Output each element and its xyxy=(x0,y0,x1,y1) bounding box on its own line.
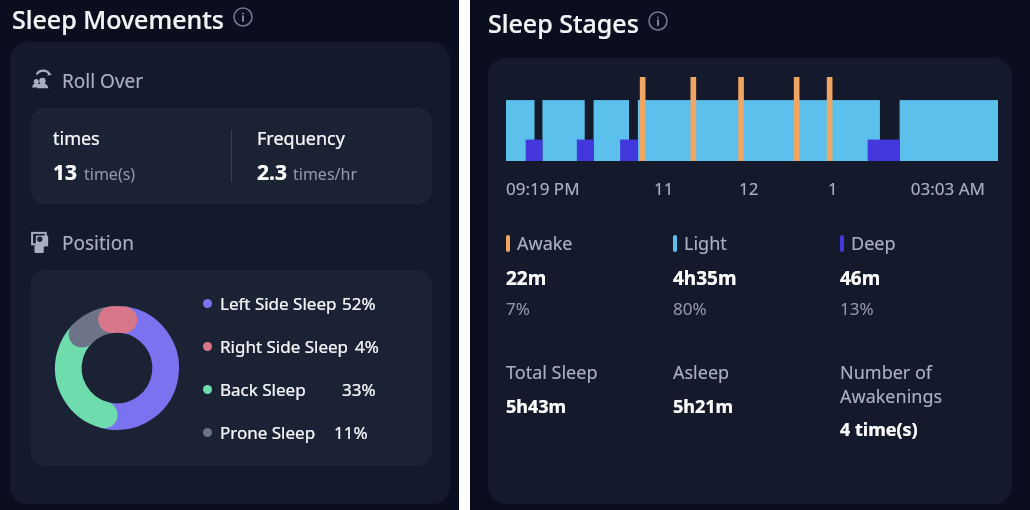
staticText: 4h35m xyxy=(673,265,737,291)
staticText: 52% xyxy=(342,292,376,315)
staticText: 13 xyxy=(53,158,78,187)
button[interactable]: Asleep xyxy=(673,360,840,419)
staticText: Total Sleep xyxy=(506,360,598,385)
staticText: time(s) xyxy=(84,163,136,185)
staticText: Awake xyxy=(517,231,573,256)
staticText: Position xyxy=(62,230,134,256)
staticText: 2.3 xyxy=(257,158,287,187)
staticText: 5h21m xyxy=(673,394,734,419)
staticText: 13% xyxy=(840,297,874,320)
button[interactable]: times xyxy=(31,108,432,204)
button[interactable]: Information xyxy=(648,11,668,31)
staticText: 33% xyxy=(342,378,376,401)
button[interactable]: Position xyxy=(31,230,432,256)
staticText: 4 time(s) xyxy=(840,417,918,442)
staticText: Sleep Movements xyxy=(12,2,224,36)
staticText: Prone Sleep xyxy=(220,421,330,444)
button[interactable]: Information xyxy=(233,7,253,27)
staticText: 4% xyxy=(355,335,379,358)
staticText: Light xyxy=(684,231,727,256)
staticText: Left Side Sleep xyxy=(220,292,338,315)
staticText: Back Sleep xyxy=(220,378,338,401)
staticText: 80% xyxy=(673,297,707,320)
button[interactable]: Right Side Sleep xyxy=(203,335,379,358)
staticText: 11% xyxy=(334,421,368,444)
button[interactable]: Roll Over xyxy=(31,68,432,94)
staticText: Frequency xyxy=(257,126,345,151)
staticText: 09:19 PM xyxy=(506,177,580,200)
button[interactable]: Number of Awakenings xyxy=(840,360,998,442)
staticText: 5h43m xyxy=(506,394,567,419)
button[interactable]: Back Sleep xyxy=(203,378,376,401)
staticText: 7% xyxy=(506,297,530,320)
staticText: Sleep Stages xyxy=(488,6,639,40)
button[interactable]: Awake xyxy=(506,231,673,320)
button[interactable]: Left Side Sleep xyxy=(203,292,376,315)
staticText: Asleep xyxy=(673,360,730,385)
staticText: 03:03 AM xyxy=(910,177,985,200)
staticText: 46m xyxy=(840,265,881,291)
staticText: Number of Awakenings xyxy=(840,360,943,408)
button[interactable]: Deep xyxy=(840,231,998,320)
button[interactable]: Light xyxy=(673,231,840,320)
button[interactable]: Prone Sleep xyxy=(203,421,368,444)
staticText: times/hr xyxy=(293,163,358,185)
staticText: 1 xyxy=(828,177,838,200)
button[interactable]: Left Side Sleep xyxy=(31,270,432,466)
staticText: Deep xyxy=(851,231,896,256)
staticText: Roll Over xyxy=(62,68,144,94)
staticText: 22m xyxy=(506,265,547,291)
staticText: 12 xyxy=(739,177,759,200)
staticText: 11 xyxy=(654,177,674,200)
staticText: Right Side Sleep xyxy=(220,335,351,358)
button[interactable]: Total Sleep xyxy=(506,360,673,419)
staticText: times xyxy=(53,126,100,151)
